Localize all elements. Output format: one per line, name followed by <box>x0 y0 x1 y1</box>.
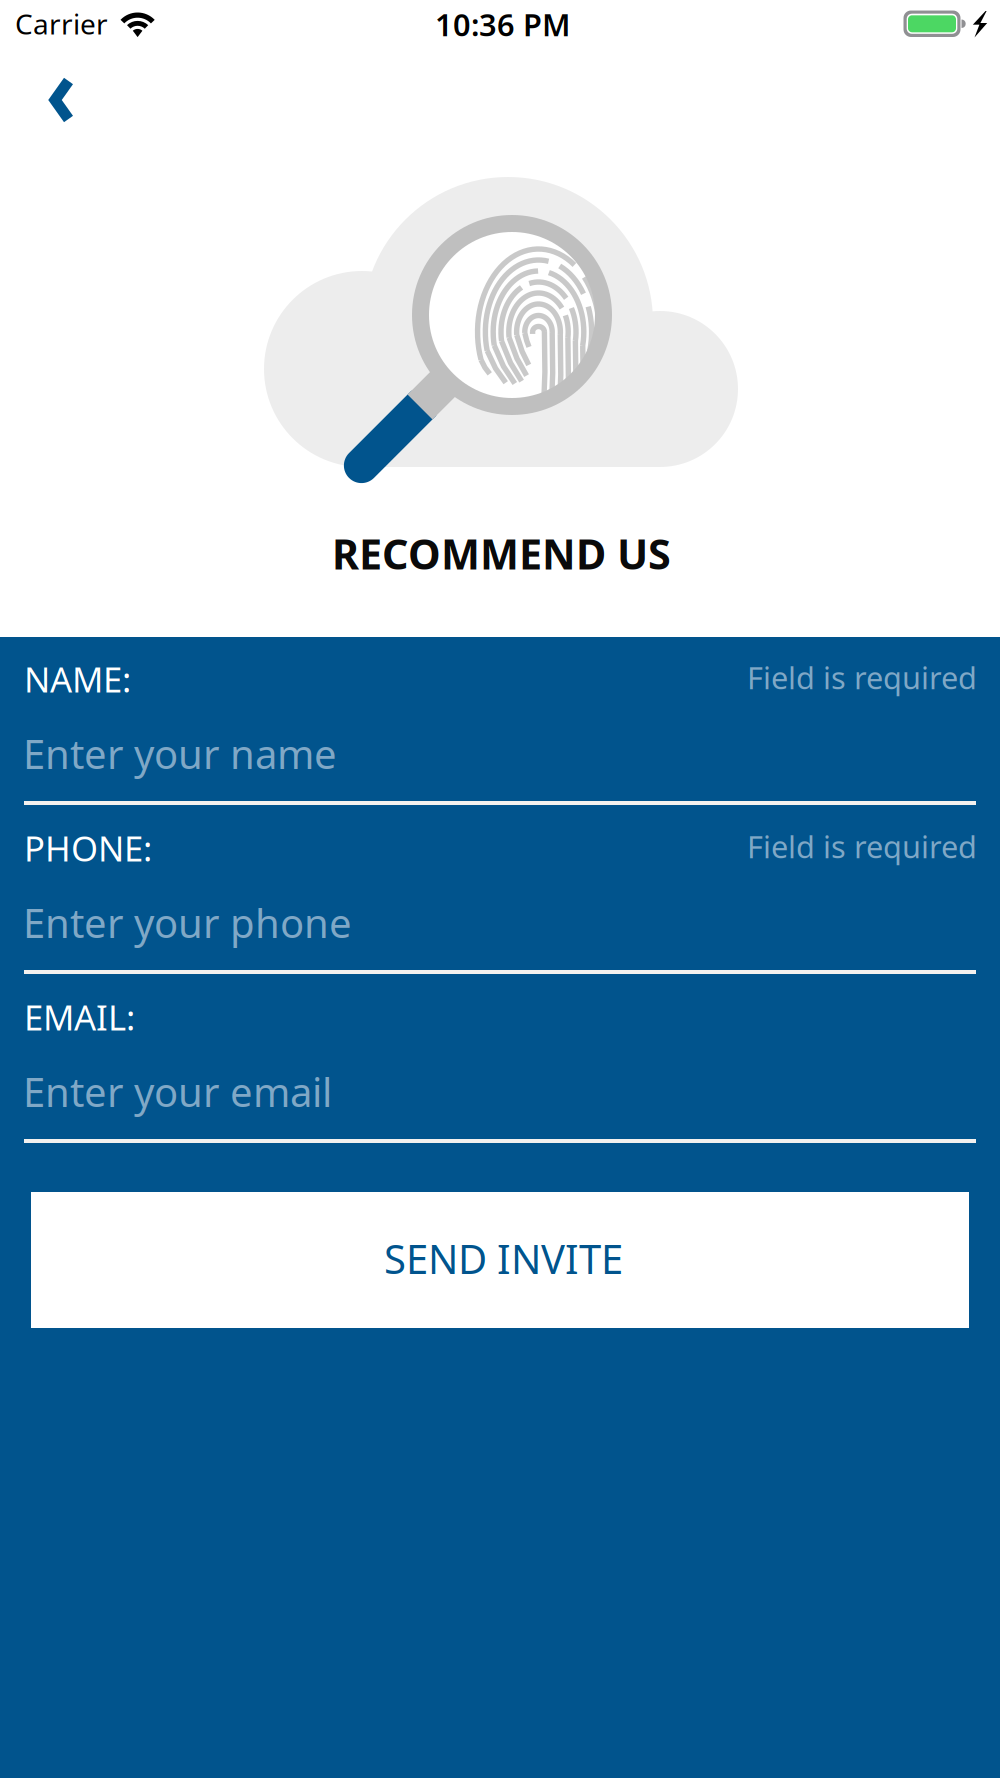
staticText: SEND INVITE <box>384 1232 623 1285</box>
staticText: RECOMMEND US <box>332 526 671 581</box>
button[interactable]: Back <box>0 58 110 162</box>
staticText: Field is required <box>747 657 977 698</box>
staticText: Enter your email <box>23 1065 332 1118</box>
staticText: EMAIL: <box>24 994 135 1040</box>
staticText: 10:36 PM <box>435 4 570 45</box>
staticText: NAME: <box>24 656 131 702</box>
button[interactable]: SEND INVITE <box>31 1192 969 1328</box>
staticText: Enter your phone <box>23 896 352 949</box>
staticText: PHONE: <box>24 825 152 871</box>
staticText: Carrier <box>15 5 108 42</box>
staticText: Field is required <box>747 826 977 867</box>
staticText: Enter your name <box>23 727 337 780</box>
